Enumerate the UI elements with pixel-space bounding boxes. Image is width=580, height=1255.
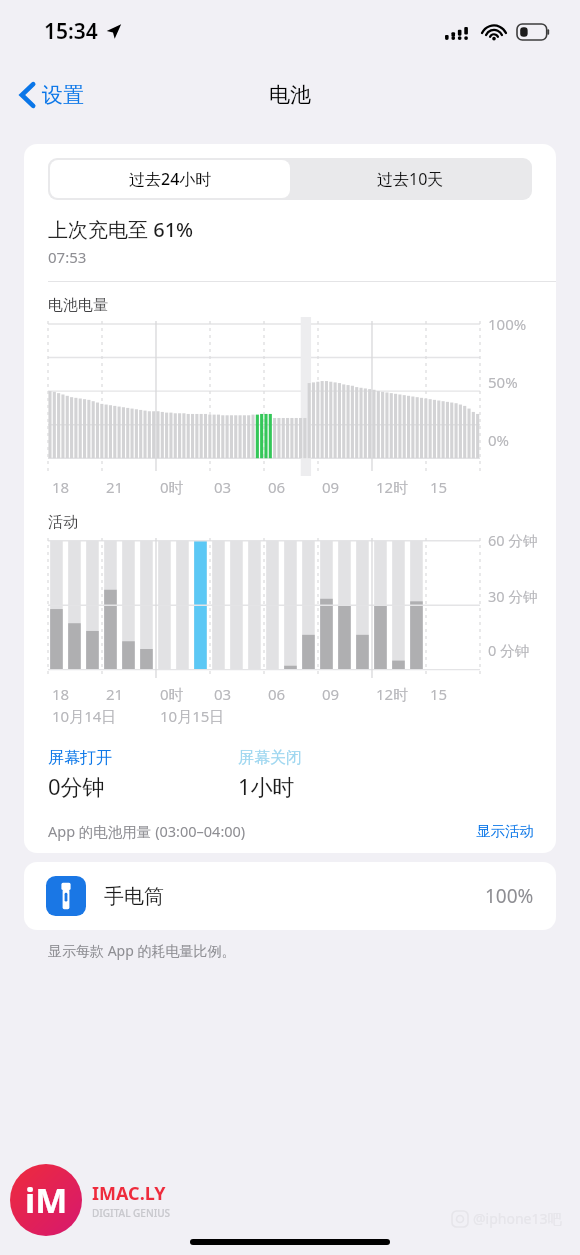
staticText: 60 分钟 (488, 530, 538, 550)
staticText: 屏幕打开 (48, 748, 112, 768)
staticText: 03 (214, 477, 232, 497)
staticText: 10月14日 (52, 706, 117, 726)
staticText: 09 (322, 477, 340, 497)
staticText: 15:34 (44, 17, 98, 46)
staticText: App 的电池用量 (03:00–04:00) (48, 821, 246, 841)
staticText: 显示活动 (476, 822, 534, 840)
staticText: 上次充电至 61% (48, 216, 194, 243)
staticText: 0时 (160, 684, 184, 704)
staticText: 03 (214, 684, 232, 704)
button[interactable]: 手电筒 (24, 862, 556, 930)
staticText: 06 (268, 477, 286, 497)
button[interactable]: 过去24小时 (50, 160, 290, 198)
button[interactable]: 显示活动 (476, 822, 534, 840)
button[interactable]: 过去10天 (290, 160, 530, 198)
staticText: 06 (268, 684, 286, 704)
staticText: DIGITAL GENIUS (92, 1206, 171, 1220)
staticText: 手电筒 (104, 884, 164, 909)
staticText: @iphone13吧 (473, 1209, 562, 1228)
staticText: 07:53 (48, 247, 87, 267)
staticText: 1小时 (238, 771, 295, 801)
staticText: 21 (106, 477, 124, 497)
staticText: 50% (488, 372, 518, 392)
staticText: 15 (430, 477, 448, 497)
staticText: 过去24小时 (129, 168, 212, 190)
staticText: 0时 (160, 477, 184, 497)
staticText: 过去10天 (377, 168, 444, 190)
staticText: 12时 (376, 477, 409, 497)
staticText: iM (25, 1177, 68, 1223)
staticText: 设置 (42, 82, 84, 108)
button[interactable]: 设置 (14, 76, 90, 114)
staticText: 12时 (376, 684, 409, 704)
staticText: 15 (430, 684, 448, 704)
staticText: 电池电量 (48, 296, 108, 315)
staticText: 活动 (48, 513, 78, 532)
staticText: 30 分钟 (488, 586, 538, 606)
staticText: 0分钟 (48, 771, 105, 801)
staticText: 18 (52, 684, 70, 704)
staticText: 屏幕关闭 (238, 748, 302, 768)
staticText: 10月15日 (160, 706, 225, 726)
staticText: 100% (485, 883, 534, 909)
staticText: 09 (322, 684, 340, 704)
staticText: 显示每款 App 的耗电量比例。 (48, 941, 236, 960)
staticText: 0 分钟 (488, 640, 530, 660)
staticText: 电池 (269, 82, 311, 108)
staticText: 21 (106, 684, 124, 704)
staticText: IMAC.LY (92, 1181, 166, 1206)
staticText: 100% (488, 314, 527, 334)
staticText: 18 (52, 477, 70, 497)
staticText: 0% (488, 430, 510, 450)
